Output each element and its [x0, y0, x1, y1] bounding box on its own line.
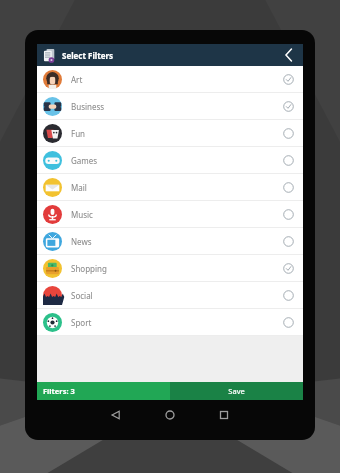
- button[interactable]: Social: [37, 282, 303, 309]
- button[interactable]: Fun: [37, 120, 303, 147]
- button[interactable]: Games: [37, 147, 303, 174]
- staticText: Social: [71, 290, 93, 301]
- button[interactable]: Filters: 3: [37, 382, 170, 400]
- button[interactable]: News: [37, 228, 303, 255]
- staticText: Save: [228, 386, 245, 396]
- button[interactable]: Home: [161, 406, 179, 424]
- staticText: Mail: [71, 182, 87, 193]
- staticText: Sport: [71, 317, 92, 328]
- button[interactable]: Art: [37, 66, 303, 93]
- staticText: Games: [71, 155, 98, 166]
- staticText: Business: [71, 101, 105, 112]
- button[interactable]: Music: [37, 201, 303, 228]
- button[interactable]: Mail: [37, 174, 303, 201]
- button[interactable]: Sport: [37, 309, 303, 336]
- staticText: News: [71, 236, 92, 247]
- button[interactable]: Save: [170, 382, 303, 400]
- button[interactable]: Shopping: [37, 255, 303, 282]
- staticText: Fun: [71, 128, 86, 139]
- staticText: Music: [71, 209, 93, 220]
- button[interactable]: Back: [278, 45, 298, 65]
- staticText: Select Filters: [62, 50, 114, 61]
- button[interactable]: Business: [37, 93, 303, 120]
- staticText: Filters: 3: [43, 386, 75, 396]
- button[interactable]: Recents: [215, 406, 233, 424]
- staticText: Art: [71, 74, 83, 85]
- staticText: Shopping: [71, 263, 107, 274]
- button[interactable]: Back: [107, 406, 125, 424]
